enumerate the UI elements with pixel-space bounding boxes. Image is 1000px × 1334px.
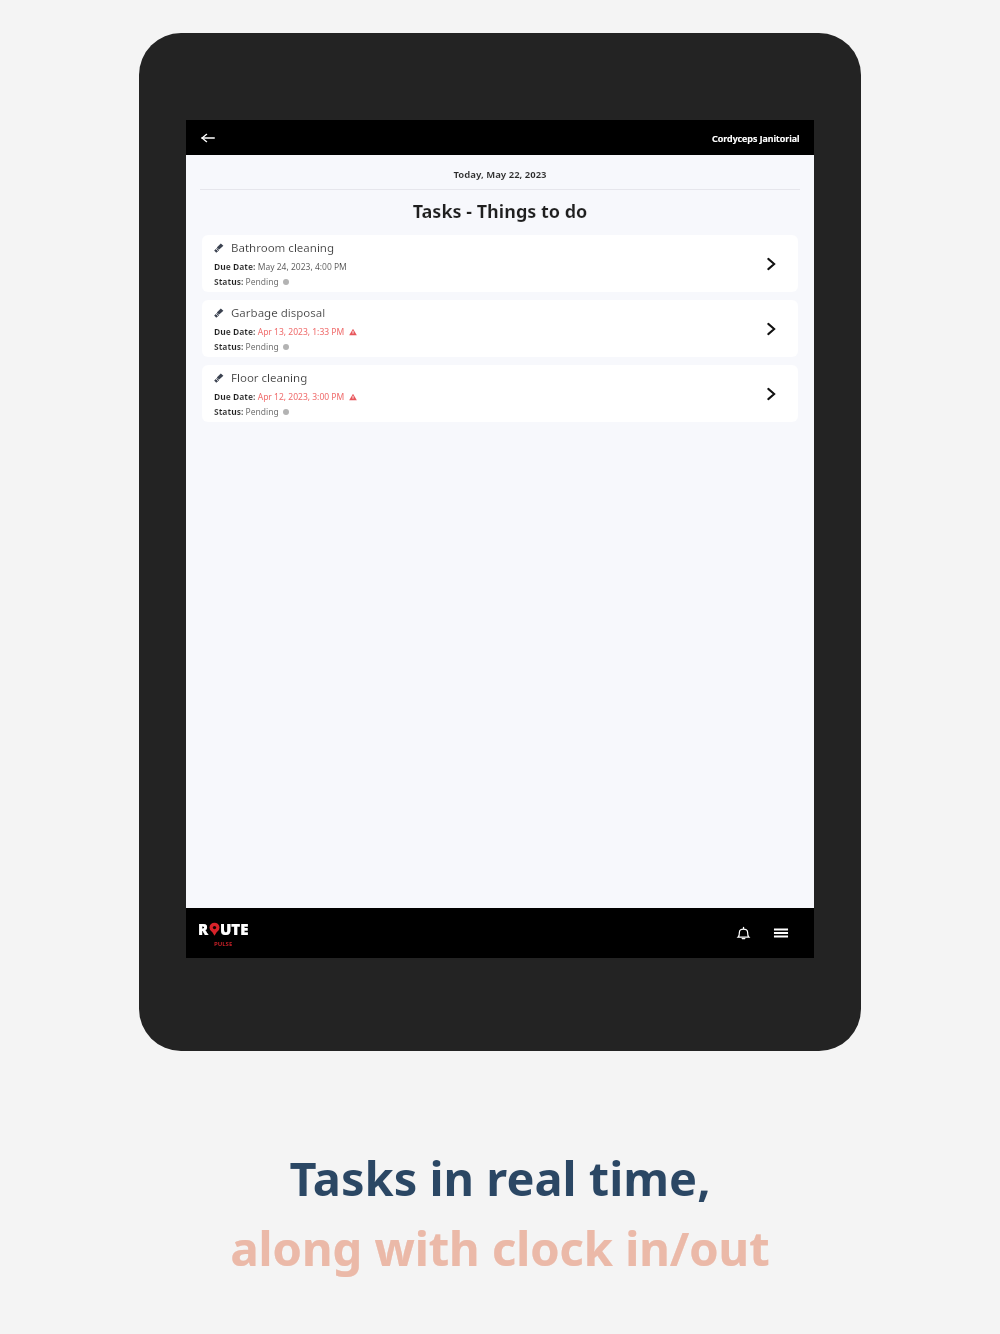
staticText: Bathroom cleaning [231, 240, 335, 256]
staticText: Due Date: May 24, 2023, 4:00 PM [214, 261, 347, 273]
staticText: Due Date: Apr 13, 2023, 1:33 PM [214, 326, 345, 338]
button[interactable]: Floor cleaning [202, 365, 798, 422]
staticText: Due Date: Apr 12, 2023, 3:00 PM [214, 391, 345, 403]
button[interactable]: Menu [766, 918, 796, 948]
staticText: UTE [220, 919, 249, 939]
staticText: Status: Pending [214, 276, 279, 288]
staticText: Floor cleaning [231, 370, 308, 386]
button[interactable]: Route Pulse home [198, 919, 249, 948]
staticText: Status: Pending [214, 341, 279, 353]
staticText: Tasks in real time, [289, 1146, 711, 1210]
other: Open task [758, 251, 784, 277]
staticText: Cordyceps Janitorial [712, 132, 800, 144]
button[interactable]: Garbage disposal [202, 300, 798, 357]
staticText: Status: Pending [214, 406, 279, 418]
staticText: along with clock in/out [230, 1216, 770, 1280]
staticText: PULSE [214, 940, 233, 948]
staticText: Tasks - Things to do [186, 199, 814, 224]
other: Open task [758, 381, 784, 407]
button[interactable]: Bathroom cleaning [202, 235, 798, 292]
button[interactable]: Notifications [728, 918, 758, 948]
staticText: R [198, 919, 209, 939]
other: Open task [758, 316, 784, 342]
staticText: Garbage disposal [231, 305, 326, 321]
button[interactable]: Back [194, 124, 222, 152]
staticText: Today, May 22, 2023 [186, 168, 814, 181]
